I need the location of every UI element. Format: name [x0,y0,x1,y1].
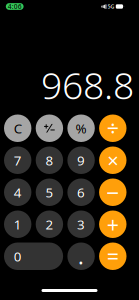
button[interactable]: × [99,146,126,174]
button[interactable]: % [67,114,95,142]
staticText: 2 [45,215,53,233]
staticText: = [107,242,119,270]
button[interactable]: 5 [36,178,63,206]
staticText: 0 [14,247,22,265]
button[interactable]: 9 [67,146,95,174]
button[interactable]: 1 [4,210,31,238]
button[interactable]: + [99,210,126,238]
staticText: 8 [45,151,53,169]
staticText: 5G [107,3,114,10]
button[interactable]: = [99,242,126,270]
staticText: 7 [14,151,22,169]
staticText: × [107,147,118,174]
button[interactable]: 6 [67,178,95,206]
staticText: 4 [14,183,22,201]
button[interactable]: 7 [4,146,31,174]
button[interactable]: ÷ [99,114,126,142]
staticText: 4:06 [8,2,22,11]
staticText: 1 [14,215,22,233]
staticText: ÷ [107,114,119,142]
staticText: 5 [45,183,53,201]
button[interactable]: 0 [4,242,63,270]
button[interactable]: C [4,114,31,142]
staticText: 3 [77,215,85,233]
staticText: 968.8 [41,60,134,110]
staticText: 6 [77,183,85,201]
staticText: + [107,210,119,238]
staticText: % [76,119,87,137]
button[interactable]: 8 [36,146,63,174]
staticText: . [78,242,84,270]
staticText: 9 [77,151,85,169]
button[interactable]: . [67,242,95,270]
button[interactable]: Plus minus [36,114,63,142]
button[interactable]: 4 [4,178,31,206]
staticText: C [14,119,22,137]
button[interactable]: − [99,178,126,206]
staticText: − [106,177,119,207]
button[interactable]: 3 [67,210,95,238]
button[interactable]: 2 [36,210,63,238]
